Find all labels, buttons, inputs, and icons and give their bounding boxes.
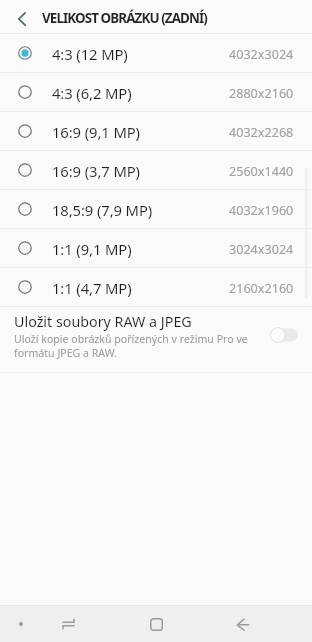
button[interactable]: 4:3 (12 MP): [0, 34, 312, 72]
staticText: 2560x1440: [229, 163, 294, 180]
button[interactable]: Home: [140, 608, 172, 640]
staticText: 2160x2160: [229, 280, 294, 297]
staticText: 1:1 (4,7 MP): [52, 278, 132, 298]
button[interactable]: Back: [227, 608, 259, 640]
button[interactable]: 1:1 (4,7 MP): [0, 268, 312, 306]
staticText: 4032x3024: [229, 46, 294, 63]
button[interactable]: 4:3 (6,2 MP): [0, 73, 312, 111]
staticText: 16:9 (3,7 MP): [52, 161, 140, 181]
staticText: VELIKOST OBRÁZKU (ZADNÍ): [42, 9, 207, 27]
staticText: 3024x3024: [229, 241, 294, 258]
button[interactable]: 16:9 (9,1 MP): [0, 112, 312, 150]
staticText: 4032x1960: [229, 202, 294, 219]
button[interactable]: 1:1 (9,1 MP): [0, 229, 312, 267]
button[interactable]: Uložit soubory RAW a JPEG: [0, 307, 312, 372]
staticText: 4:3 (6,2 MP): [52, 83, 132, 103]
staticText: 4032x2268: [229, 124, 294, 141]
staticText: 16:9 (9,1 MP): [52, 122, 140, 142]
button[interactable]: Recent apps: [52, 608, 84, 640]
button[interactable]: 16:9 (3,7 MP): [0, 151, 312, 189]
staticText: Uložit soubory RAW a JPEG: [14, 312, 192, 331]
staticText: 18,5:9 (7,9 MP): [52, 200, 153, 220]
button[interactable]: Navigate up: [0, 0, 42, 33]
staticText: 2880x2160: [229, 85, 294, 102]
button[interactable]: Hide keyboard: [10, 613, 32, 635]
button[interactable]: 18,5:9 (7,9 MP): [0, 190, 312, 228]
staticText: 4:3 (12 MP): [52, 44, 128, 64]
staticText: 1:1 (9,1 MP): [52, 239, 132, 259]
staticText: Uloží kopie obrázků pořízených v režimu …: [14, 332, 248, 360]
